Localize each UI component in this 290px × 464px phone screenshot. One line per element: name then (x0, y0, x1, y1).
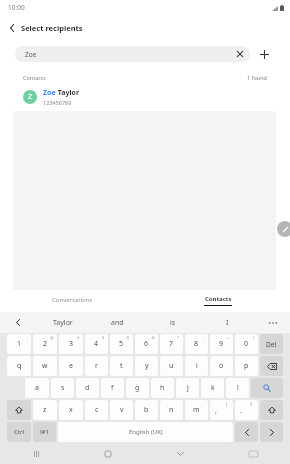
staticText: o (219, 361, 224, 371)
staticText: c (95, 405, 99, 415)
button[interactable]: Z (0, 86, 290, 108)
button[interactable]: Shift (7, 400, 31, 420)
button[interactable]: q (7, 356, 31, 376)
button[interactable]: Navigate up (0, 17, 24, 39)
button[interactable]: I (200, 312, 255, 333)
button[interactable]: c (85, 400, 108, 420)
button[interactable]: 0 (235, 334, 258, 354)
button[interactable]: Contacts (145, 291, 290, 309)
button[interactable]: i (185, 356, 208, 376)
button[interactable]: 5 (110, 334, 133, 354)
button[interactable]: 8 (185, 334, 208, 354)
button[interactable]: Hide keyboard (144, 444, 217, 464)
button[interactable]: b (135, 400, 158, 420)
button[interactable]: Previous suggestions (0, 312, 35, 333)
staticText: , (215, 406, 217, 416)
button[interactable]: , (210, 400, 233, 420)
button[interactable]: f (101, 378, 124, 398)
staticText: p (244, 361, 249, 371)
staticText: 5 (119, 339, 124, 349)
button[interactable]: Clear text (231, 46, 249, 62)
button[interactable]: 9 (210, 334, 233, 354)
button[interactable]: Backspace (260, 356, 283, 376)
button[interactable]: Move cursor right (260, 422, 283, 442)
button[interactable]: . (235, 400, 258, 420)
button[interactable]: t (110, 356, 133, 376)
button[interactable]: n (160, 400, 183, 420)
staticText: Select recipients (21, 23, 83, 33)
button[interactable]: 1 (7, 334, 31, 354)
button[interactable]: a (25, 378, 49, 398)
button[interactable]: w (33, 356, 57, 376)
staticText: 1 found (247, 74, 267, 81)
staticText: is (170, 318, 176, 328)
staticText: a (35, 383, 39, 393)
staticText: l (237, 383, 239, 393)
button[interactable]: Add recipient (250, 43, 278, 65)
button[interactable]: o (210, 356, 233, 376)
button[interactable]: l (226, 378, 249, 398)
button[interactable]: y (135, 356, 158, 376)
staticText: j (187, 383, 189, 393)
button[interactable]: s (51, 378, 74, 398)
button[interactable]: d (76, 378, 99, 398)
staticText: f (111, 383, 114, 393)
button[interactable]: g (126, 378, 149, 398)
button[interactable]: Search (251, 378, 283, 398)
staticText: y (145, 361, 149, 371)
staticText: 3 (69, 339, 74, 349)
staticText: d (85, 383, 90, 393)
button[interactable]: is (145, 312, 200, 333)
staticText: z (43, 405, 47, 415)
button[interactable]: 4 (85, 334, 108, 354)
button[interactable]: 2 (33, 334, 57, 354)
button[interactable]: More options (255, 312, 290, 333)
staticText: 4 (94, 339, 99, 349)
button[interactable]: Home (72, 444, 144, 464)
button[interactable]: 6 (135, 334, 158, 354)
button[interactable]: Edit (277, 221, 290, 237)
button[interactable]: Move cursor left (235, 422, 258, 442)
staticText: Zoe (25, 50, 231, 59)
staticText: 123456789 (43, 99, 72, 106)
staticText: t (120, 361, 123, 371)
button[interactable]: x (59, 400, 83, 420)
button[interactable]: and (90, 312, 145, 333)
staticText: u (169, 361, 174, 371)
button[interactable]: k (201, 378, 224, 398)
button[interactable]: English (UK) (58, 422, 233, 442)
button[interactable]: 7 (160, 334, 183, 354)
button[interactable]: !#1 (33, 422, 56, 442)
button[interactable]: p (235, 356, 258, 376)
button[interactable]: 3 (59, 334, 83, 354)
staticText: Zoe (43, 88, 56, 98)
button[interactable]: Del (260, 334, 283, 354)
button[interactable]: j (176, 378, 199, 398)
button[interactable]: m (185, 400, 208, 420)
staticText: % (126, 335, 130, 340)
button[interactable]: Taylor (35, 312, 90, 333)
staticText: !#1 (40, 428, 49, 436)
staticText: x (69, 405, 73, 415)
button[interactable]: Zoe (15, 46, 250, 62)
button[interactable]: z (33, 400, 57, 420)
staticText: v (120, 405, 124, 415)
staticText: Contacts (205, 295, 232, 303)
button[interactable]: v (110, 400, 133, 420)
button[interactable]: Ctrl (7, 422, 31, 442)
button[interactable]: Recent apps (0, 444, 72, 464)
button[interactable]: Conversations (0, 291, 145, 309)
staticText: h (160, 383, 165, 393)
button[interactable]: e (59, 356, 83, 376)
staticText: Taylor (56, 88, 80, 98)
button[interactable]: Change keyboard (217, 444, 290, 464)
staticText: $ (102, 335, 105, 340)
button[interactable]: u (160, 356, 183, 376)
staticText: n (169, 405, 174, 415)
staticText: 0 (244, 339, 249, 349)
button[interactable]: Shift (260, 400, 283, 420)
staticText: 1 (17, 339, 22, 349)
button[interactable]: r (85, 356, 108, 376)
staticText: 10:00 (8, 3, 25, 12)
button[interactable]: h (151, 378, 174, 398)
